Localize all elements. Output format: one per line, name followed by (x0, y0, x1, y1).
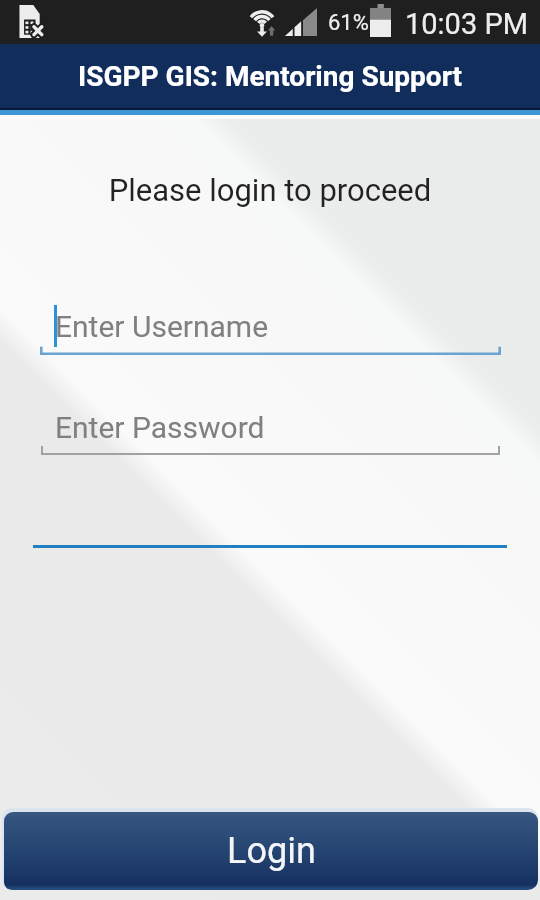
button[interactable]: Login (2, 808, 538, 890)
other: Wi-Fi (247, 5, 277, 38)
button[interactable]: Enter Username (40, 305, 501, 355)
staticText: 10:03 PM (405, 7, 529, 41)
staticText: Please login to proceed (0, 172, 540, 208)
other: Battery 61 percent (370, 4, 391, 37)
other: SIM card error (19, 5, 42, 38)
staticText: Enter Username (55, 309, 269, 344)
staticText: ISGPP GIS: Mentoring Support (78, 60, 463, 93)
button[interactable]: Enter Password (41, 405, 500, 455)
staticText: Enter Password (55, 410, 265, 445)
other: Signal strength (285, 8, 317, 36)
staticText: 61% (328, 10, 369, 36)
staticText: Login (227, 830, 316, 872)
